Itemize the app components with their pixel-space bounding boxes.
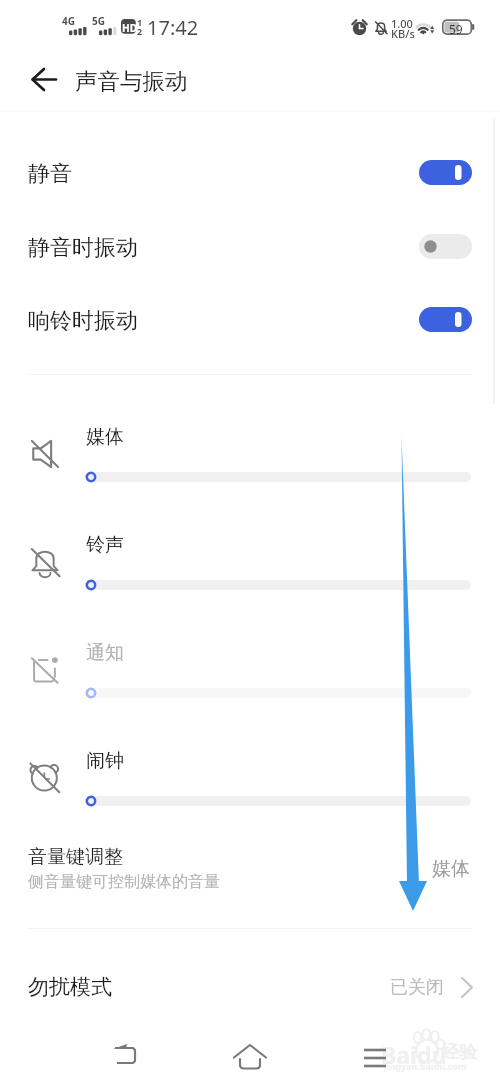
staticText: 铃声 bbox=[86, 533, 124, 557]
staticText: 2 bbox=[137, 25, 143, 37]
staticText: Baidu bbox=[381, 1039, 447, 1070]
staticText: 1 bbox=[137, 16, 143, 28]
button[interactable]: 通知 bbox=[0, 637, 500, 737]
staticText: KB/s bbox=[391, 26, 415, 41]
button[interactable]: 静音时振动 bbox=[0, 210, 500, 283]
staticText: 响铃时振动 bbox=[28, 307, 138, 335]
staticText: 声音与振动 bbox=[75, 67, 188, 95]
staticText: 静音 bbox=[28, 160, 72, 188]
button[interactable]: 铃声 bbox=[0, 529, 500, 629]
staticText: 59 bbox=[449, 21, 463, 37]
button[interactable]: 媒体 bbox=[0, 421, 500, 521]
staticText: 4G bbox=[62, 14, 75, 28]
staticText: jingyan.baidu.com bbox=[384, 1060, 467, 1072]
staticText: 音量键调整 bbox=[28, 845, 123, 869]
button[interactable]: Recent apps bbox=[350, 1024, 400, 1074]
staticText: 媒体 bbox=[432, 857, 470, 881]
staticText: 17:42 bbox=[147, 14, 199, 41]
staticText: 媒体 bbox=[86, 425, 124, 449]
button[interactable]: 勿扰模式 bbox=[0, 950, 500, 1020]
button[interactable]: Home bbox=[225, 1024, 275, 1074]
button[interactable]: 响铃时振动 bbox=[0, 283, 500, 356]
staticText: 侧音量键可控制媒体的音量 bbox=[28, 872, 220, 892]
staticText: 通知 bbox=[86, 641, 124, 665]
staticText: 静音时振动 bbox=[28, 234, 138, 262]
staticText: 1.00 bbox=[391, 16, 413, 31]
staticText: 勿扰模式 bbox=[28, 974, 112, 1000]
button[interactable]: 静音 bbox=[0, 136, 500, 209]
button[interactable]: Back bbox=[20, 62, 58, 100]
staticText: 5G bbox=[92, 14, 105, 28]
button[interactable]: 闹钟 bbox=[0, 745, 500, 845]
button[interactable]: Back bbox=[100, 1024, 150, 1074]
staticText: 闹钟 bbox=[86, 749, 124, 773]
staticText: 经验 bbox=[441, 1041, 477, 1064]
button[interactable]: 音量键调整 bbox=[0, 832, 500, 904]
staticText: 已关闭 bbox=[390, 976, 444, 999]
staticText: HD bbox=[122, 21, 137, 35]
